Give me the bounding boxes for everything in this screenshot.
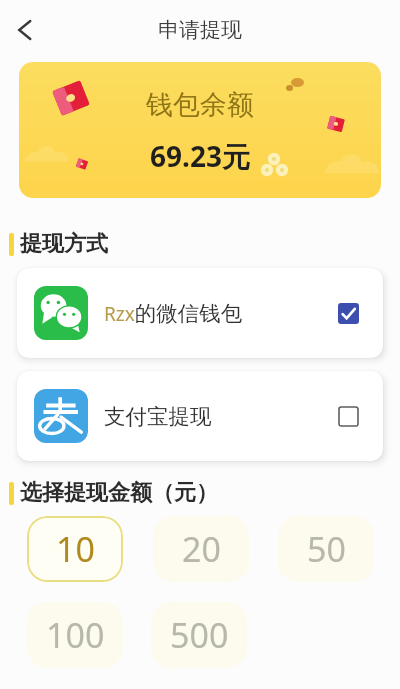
staticText: 支付宝提现 <box>104 403 212 430</box>
staticText: 500 <box>170 612 229 658</box>
button[interactable]: Selected <box>338 303 359 324</box>
staticText: Rzx的微信钱包 <box>104 300 243 327</box>
button[interactable]: 10 <box>27 516 123 582</box>
button[interactable]: Rzx的微信钱包 <box>17 268 383 358</box>
button[interactable]: 50 <box>278 516 374 582</box>
button[interactable]: 500 <box>151 602 247 668</box>
staticText: 20 <box>182 526 221 572</box>
staticText: 100 <box>46 612 105 658</box>
staticText: 10 <box>56 526 95 572</box>
staticText: 提现方式 <box>20 230 108 258</box>
button[interactable]: 20 <box>153 516 249 582</box>
button[interactable]: Back <box>3 8 47 52</box>
staticText: 50 <box>307 526 346 572</box>
staticText: 69.23元 <box>150 137 250 175</box>
button[interactable]: Not selected <box>338 406 359 427</box>
staticText: 钱包余额 <box>146 88 254 122</box>
staticText: 选择提现金额（元） <box>20 479 218 507</box>
button[interactable]: 100 <box>27 602 123 668</box>
staticText: 申请提现 <box>158 17 242 43</box>
button[interactable]: 支付宝提现 <box>17 371 383 461</box>
